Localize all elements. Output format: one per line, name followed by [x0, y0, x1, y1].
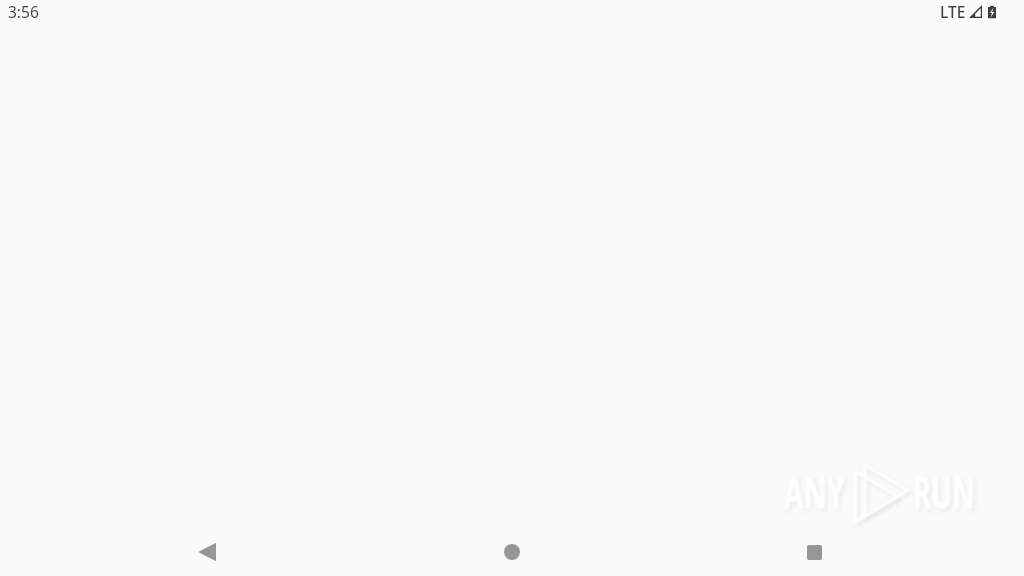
staticText: 3:56 [8, 1, 39, 22]
button[interactable]: Recent apps [790, 528, 838, 576]
staticText: LTE [940, 1, 966, 22]
button[interactable]: Home [488, 528, 536, 576]
button[interactable]: Back [184, 528, 232, 576]
